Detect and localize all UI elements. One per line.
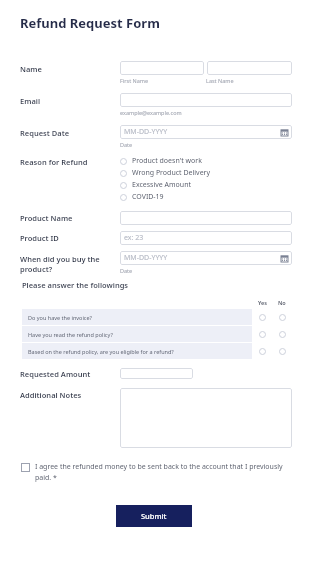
- staticText: Please answer the followings: [22, 280, 129, 290]
- button[interactable]: No: [272, 309, 292, 325]
- button[interactable]: I agree the refunded money to be sent ba…: [21, 462, 292, 482]
- staticText: Request Date: [20, 128, 120, 138]
- staticText: Submit: [141, 511, 167, 521]
- staticText: Excessive Amount: [132, 180, 192, 190]
- button[interactable]: [120, 211, 292, 225]
- button[interactable]: Excessive Amount: [120, 179, 292, 191]
- button[interactable]: Product doesn't work: [120, 155, 292, 167]
- staticText: When did you buy the product?: [20, 254, 120, 274]
- staticText: example@example.com: [120, 109, 182, 116]
- button[interactable]: [120, 93, 292, 107]
- staticText: ex: 23: [124, 233, 144, 243]
- staticText: No: [278, 299, 286, 306]
- staticText: Requested Amount: [20, 369, 120, 379]
- staticText: MM-DD-YYYY: [124, 253, 168, 263]
- button[interactable]: [120, 61, 204, 75]
- staticText: Based on the refund policy, are you elig…: [28, 348, 174, 355]
- staticText: Date: [120, 267, 133, 274]
- staticText: Yes: [258, 299, 267, 306]
- button[interactable]: Wrong Product Delivery: [120, 167, 292, 179]
- staticText: Wrong Product Delivery: [132, 168, 211, 178]
- staticText: Refund Request Form: [20, 14, 160, 32]
- button[interactable]: No: [272, 326, 292, 342]
- staticText: I agree the refunded money to be sent ba…: [35, 462, 292, 482]
- button[interactable]: [120, 388, 292, 448]
- button[interactable]: Yes: [252, 309, 272, 325]
- button[interactable]: MM-DD-YYYY: [120, 125, 292, 139]
- staticText: Date: [120, 141, 133, 148]
- button[interactable]: Submit: [116, 505, 192, 527]
- staticText: Product doesn't work: [132, 156, 202, 166]
- staticText: Reason for Refund: [20, 157, 120, 167]
- button[interactable]: Yes: [252, 326, 272, 342]
- button[interactable]: Yes: [252, 343, 272, 359]
- staticText: Email: [20, 96, 120, 106]
- staticText: COVID-19: [132, 192, 164, 202]
- staticText: Last Name: [206, 77, 292, 84]
- staticText: Name: [20, 64, 120, 74]
- button[interactable]: MM-DD-YYYY: [120, 251, 292, 265]
- button[interactable]: [120, 368, 193, 379]
- staticText: Do you have the invoice?: [28, 314, 92, 321]
- staticText: MM-DD-YYYY: [124, 127, 168, 137]
- staticText: Have you read the refund policy?: [28, 331, 113, 338]
- staticText: Product Name: [20, 213, 120, 223]
- button[interactable]: [207, 61, 292, 75]
- button[interactable]: COVID-19: [120, 191, 292, 203]
- staticText: First Name: [120, 77, 206, 84]
- button[interactable]: ex: 23: [120, 231, 292, 245]
- staticText: Additional Notes: [20, 390, 120, 400]
- staticText: Product ID: [20, 233, 120, 243]
- button[interactable]: No: [272, 343, 292, 359]
